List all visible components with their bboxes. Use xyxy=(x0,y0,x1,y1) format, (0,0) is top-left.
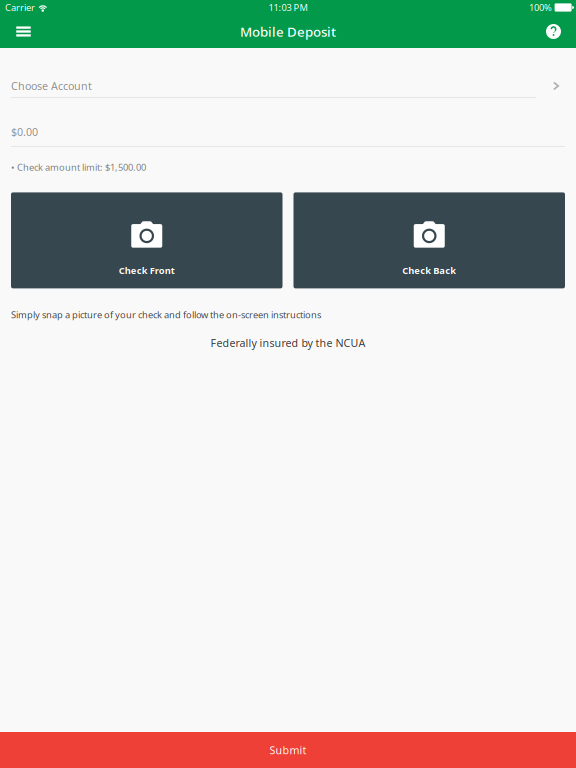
staticText: Check Back xyxy=(402,264,456,277)
staticText: • Check amount limit: $1,500.00 xyxy=(11,161,146,173)
staticText: $0.00 xyxy=(11,125,38,139)
staticText: Submit xyxy=(269,743,306,757)
button[interactable]: Submit xyxy=(0,732,576,768)
button[interactable]: Check Back xyxy=(293,192,565,288)
staticText: Choose Account xyxy=(11,79,92,93)
staticText: Check Front xyxy=(119,264,175,277)
staticText: Mobile Deposit xyxy=(240,23,336,40)
button[interactable]: Choose Account xyxy=(11,62,565,98)
button[interactable]: Help xyxy=(537,15,570,48)
staticText: Carrier xyxy=(5,1,35,14)
button[interactable]: Menu xyxy=(7,15,40,48)
staticText: 100% xyxy=(529,1,552,14)
staticText: Simply snap a picture of your check and … xyxy=(11,308,321,321)
staticText: 11:03 PM xyxy=(268,1,307,14)
staticText: Federally insured by the NCUA xyxy=(210,336,365,350)
button[interactable]: Check Front xyxy=(11,192,282,288)
